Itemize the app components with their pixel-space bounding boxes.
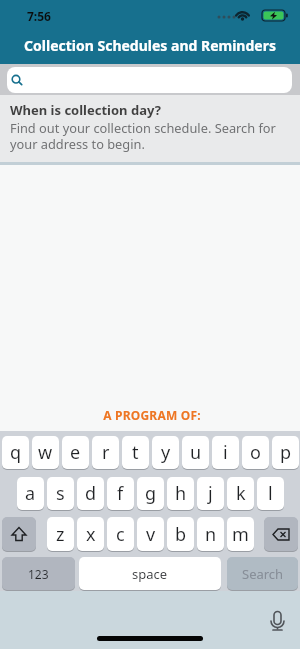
staticText: p	[280, 440, 292, 465]
button[interactable]: g	[137, 477, 164, 510]
staticText: a	[25, 481, 36, 506]
staticText: i	[223, 440, 228, 465]
button[interactable]: d	[77, 477, 104, 510]
staticText: j	[208, 481, 213, 506]
button[interactable]	[7, 67, 292, 93]
button[interactable]: 123	[2, 557, 75, 590]
staticText: m	[232, 522, 249, 547]
staticText: Search	[242, 565, 284, 583]
button[interactable]: f	[107, 477, 134, 510]
staticText: x	[86, 522, 96, 547]
button[interactable]: space	[79, 557, 221, 590]
staticText: t	[132, 440, 139, 465]
staticText: o	[250, 440, 261, 465]
staticText: When is collection day?	[10, 101, 161, 119]
button[interactable]: z	[47, 517, 74, 551]
staticText: y	[161, 440, 171, 465]
button[interactable]: t	[122, 436, 149, 469]
staticText: r	[102, 440, 110, 465]
staticText: g	[145, 481, 157, 506]
staticText: space	[132, 565, 168, 583]
staticText: 7:56	[27, 8, 51, 24]
button[interactable]: y	[152, 436, 179, 469]
button[interactable]: q	[2, 436, 29, 469]
staticText: Collection Schedules and Reminders	[0, 36, 300, 55]
button[interactable]: e	[62, 436, 89, 469]
button[interactable]: w	[32, 436, 59, 469]
button[interactable]: x	[77, 517, 104, 551]
button[interactable]	[2, 517, 36, 551]
staticText: l	[268, 481, 273, 506]
button[interactable]: n	[197, 517, 224, 551]
button[interactable]: m	[227, 517, 254, 551]
button[interactable]	[264, 517, 298, 551]
staticText: b	[175, 522, 187, 547]
button[interactable]: s	[47, 477, 74, 510]
button[interactable]: k	[227, 477, 254, 510]
button[interactable]: Search	[227, 557, 298, 590]
staticText: c	[116, 522, 125, 547]
staticText: f	[117, 481, 124, 506]
button[interactable]: j	[197, 477, 224, 510]
staticText: w	[38, 440, 53, 465]
staticText: s	[56, 481, 65, 506]
staticText: d	[85, 481, 97, 506]
staticText: n	[205, 522, 217, 547]
staticText: Find out your collection schedule. Searc…	[10, 119, 276, 153]
staticText: e	[70, 440, 81, 465]
button[interactable]: a	[17, 477, 44, 510]
button[interactable]: i	[212, 436, 239, 469]
staticText: v	[146, 522, 156, 547]
staticText: k	[236, 481, 246, 506]
staticText: A PROGRAM OF:	[2, 407, 300, 423]
staticText: 123	[28, 566, 49, 582]
staticText: h	[175, 481, 187, 506]
button[interactable]: l	[257, 477, 284, 510]
staticText: u	[190, 440, 202, 465]
staticText: z	[56, 522, 65, 547]
staticText: q	[10, 440, 22, 465]
button[interactable]: v	[137, 517, 164, 551]
button[interactable]: b	[167, 517, 194, 551]
button[interactable]: p	[272, 436, 299, 469]
button[interactable]: r	[92, 436, 119, 469]
button[interactable]: o	[242, 436, 269, 469]
button[interactable]: c	[107, 517, 134, 551]
button[interactable]: h	[167, 477, 194, 510]
button[interactable]: u	[182, 436, 209, 469]
